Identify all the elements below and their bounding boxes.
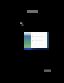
button[interactable] xyxy=(24,32,49,49)
button[interactable]: Caption xyxy=(44,69,51,72)
button[interactable]: Menu xyxy=(20,22,24,26)
